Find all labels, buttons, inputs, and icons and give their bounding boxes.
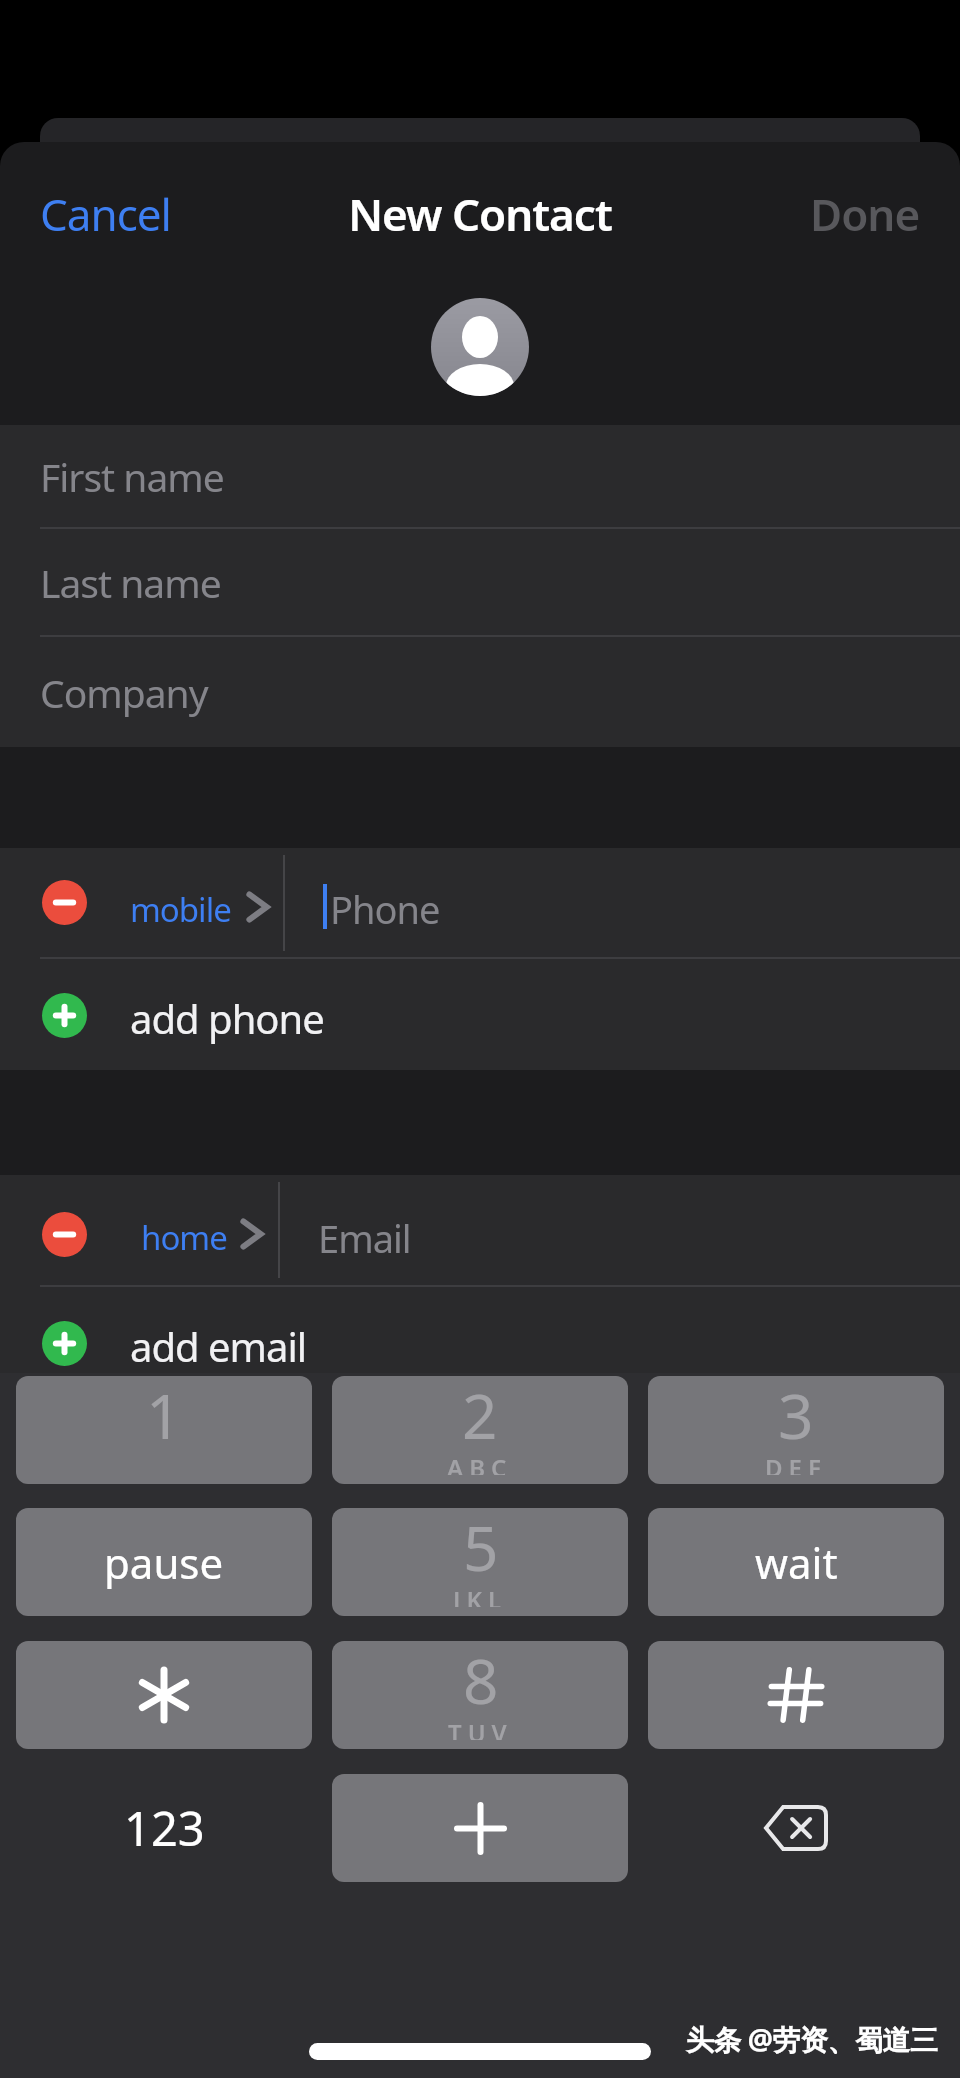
button[interactable]: add phone xyxy=(0,959,960,1070)
button[interactable]: home xyxy=(0,1175,960,1284)
button[interactable]: 2 xyxy=(332,1376,628,1484)
button[interactable]: pause xyxy=(16,1508,312,1616)
staticText: 8 xyxy=(463,1641,499,1722)
staticText: JKL xyxy=(453,1583,508,1607)
staticText: home xyxy=(141,1215,227,1260)
button[interactable] xyxy=(648,1641,944,1749)
button[interactable]: 8 xyxy=(332,1641,628,1749)
button[interactable] xyxy=(332,1774,628,1882)
button[interactable]: add email xyxy=(0,1287,960,1373)
staticText: 5 xyxy=(463,1508,499,1589)
button[interactable]: 1 xyxy=(16,1376,312,1484)
staticText: wait xyxy=(755,1534,838,1591)
staticText: mobile xyxy=(130,887,231,932)
staticText: add email xyxy=(130,1319,307,1373)
button[interactable]: Last name xyxy=(0,529,960,635)
button[interactable] xyxy=(16,1641,312,1749)
button[interactable]: 123 xyxy=(16,1774,312,1882)
button[interactable]: Company xyxy=(0,637,960,747)
staticText: pause xyxy=(104,1534,224,1591)
button[interactable]: mobile xyxy=(0,848,960,957)
button[interactable]: Done xyxy=(810,184,920,244)
staticText: Company xyxy=(40,666,208,719)
staticText: New Contact xyxy=(0,184,960,244)
staticText: Email xyxy=(318,1212,411,1264)
button[interactable] xyxy=(648,1774,944,1882)
button[interactable]: 3 xyxy=(648,1376,944,1484)
button[interactable]: 5 xyxy=(332,1508,628,1616)
staticText: Phone xyxy=(330,883,440,935)
staticText: 123 xyxy=(124,1796,205,1860)
staticText: Last name xyxy=(40,556,221,609)
button[interactable]: First name xyxy=(0,425,960,527)
staticText: 3 xyxy=(778,1376,814,1457)
staticText: ABC xyxy=(447,1451,513,1475)
staticText: DEF xyxy=(765,1451,827,1475)
staticText: 头条 @劳资、蜀道三 xyxy=(686,2020,938,2058)
staticText: 1 xyxy=(146,1376,182,1457)
button[interactable]: wait xyxy=(648,1508,944,1616)
staticText: 2 xyxy=(462,1376,498,1457)
staticText: First name xyxy=(40,450,224,503)
staticText: TUV xyxy=(448,1716,513,1740)
staticText: add phone xyxy=(130,991,324,1045)
button[interactable]: Cancel xyxy=(40,184,171,244)
